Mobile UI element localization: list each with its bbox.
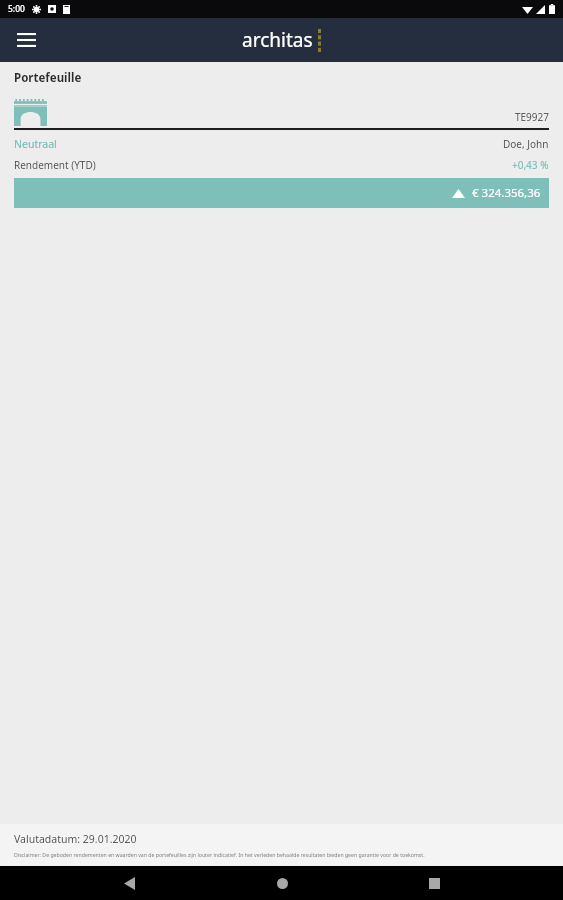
staticText: Portefeuille — [14, 70, 82, 86]
staticText: TE9927 — [515, 110, 549, 124]
staticText: Neutraal — [14, 137, 57, 151]
button[interactable]: Open navigation menu — [8, 22, 44, 58]
staticText: +0,43 % — [512, 158, 549, 172]
staticText: Doe, John — [503, 137, 549, 151]
staticText: € 324.356,36 — [472, 185, 541, 201]
button[interactable]: TE9927 — [0, 94, 563, 208]
staticText: Disclaimer: De geboden rendementen en wa… — [14, 851, 425, 858]
button[interactable]: Recent apps — [410, 866, 458, 900]
staticText: Rendement (YTD) — [14, 158, 96, 172]
button[interactable]: € 324.356,36 — [14, 178, 549, 208]
button[interactable]: Back — [105, 866, 153, 900]
button[interactable]: Home — [258, 866, 306, 900]
staticText: 5:00 — [8, 3, 25, 15]
staticText: Valutadatum: 29.01.2020 — [14, 832, 137, 846]
staticText: architas — [242, 27, 313, 53]
